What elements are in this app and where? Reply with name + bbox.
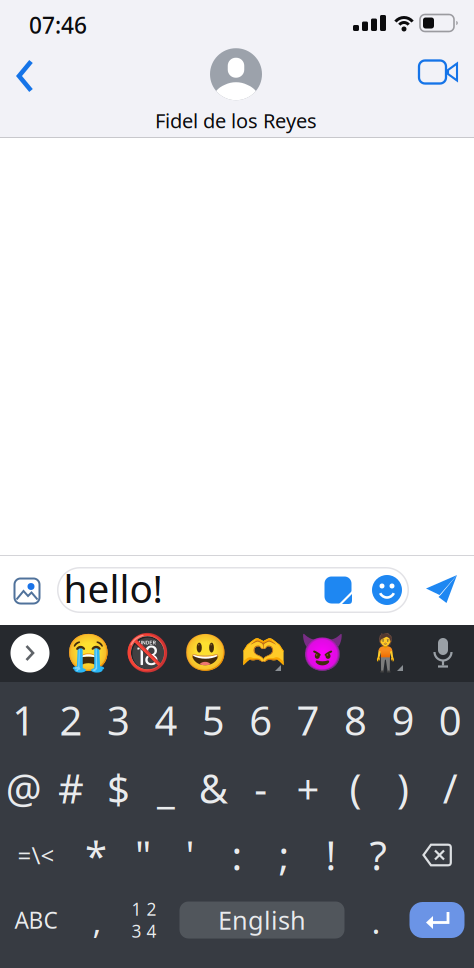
- staticText: 🔞: [124, 632, 169, 673]
- staticText: _: [157, 761, 175, 814]
- button[interactable]: ?: [354, 822, 401, 888]
- staticText: =\<: [17, 839, 54, 871]
- staticText: 🫶: [240, 632, 285, 673]
- button[interactable]: .: [352, 888, 399, 954]
- staticText: 3: [107, 693, 130, 746]
- button[interactable]: :: [213, 822, 260, 888]
- button[interactable]: Emoji: [124, 632, 169, 673]
- staticText: 6: [249, 693, 272, 746]
- staticText: ?: [369, 828, 386, 881]
- button[interactable]: FaceTime video call: [416, 50, 464, 94]
- button[interactable]: Delete: [401, 821, 473, 889]
- staticText: ;: [278, 828, 289, 881]
- button[interactable]: Numbers: [120, 886, 167, 954]
- staticText: 1 2: [131, 897, 156, 920]
- button[interactable]: +: [285, 755, 332, 821]
- button[interactable]: $: [95, 755, 142, 821]
- staticText: ): [397, 761, 409, 814]
- button[interactable]: ): [379, 755, 426, 821]
- staticText: @: [6, 761, 42, 814]
- staticText: 2: [60, 693, 83, 746]
- staticText: 07:46: [29, 10, 87, 40]
- button[interactable]: 2: [48, 687, 95, 753]
- staticText: English: [218, 903, 306, 937]
- button[interactable]: Emoji: [65, 632, 110, 673]
- button[interactable]: Back: [8, 54, 52, 98]
- button[interactable]: &: [190, 755, 237, 821]
- staticText: Fidel de los Reyes: [155, 107, 317, 134]
- staticText: 😭: [65, 632, 110, 673]
- staticText: 9: [391, 693, 414, 746]
- staticText: !: [325, 828, 336, 881]
- button[interactable]: Emoji: [182, 632, 227, 673]
- button[interactable]: -: [237, 755, 284, 821]
- staticText: &: [199, 761, 228, 814]
- staticText: (: [349, 761, 361, 814]
- staticText: .: [371, 899, 380, 943]
- staticText: 5: [202, 693, 225, 746]
- button[interactable]: @: [0, 755, 47, 821]
- button[interactable]: #: [48, 755, 95, 821]
- button[interactable]: _: [142, 755, 189, 821]
- button[interactable]: (: [332, 755, 379, 821]
- staticText: ABC: [14, 905, 57, 935]
- button[interactable]: Emoji: [240, 632, 285, 673]
- button[interactable]: 0: [427, 687, 474, 753]
- button[interactable]: 3: [95, 687, 142, 753]
- staticText: 8: [344, 693, 367, 746]
- staticText: ": [135, 828, 151, 881]
- staticText: 1: [12, 693, 35, 746]
- staticText: +: [297, 761, 320, 814]
- button[interactable]: ABC: [0, 887, 72, 953]
- button[interactable]: ;: [260, 822, 307, 888]
- button[interactable]: Emoji: [299, 632, 344, 673]
- button[interactable]: Voice input: [432, 638, 454, 668]
- button[interactable]: Emoji: [369, 570, 405, 610]
- staticText: 🧍: [362, 632, 407, 673]
- button[interactable]: ,: [73, 888, 120, 954]
- staticText: #: [58, 761, 84, 814]
- button[interactable]: ': [166, 822, 213, 888]
- staticText: ': [185, 828, 194, 881]
- button[interactable]: Send: [420, 568, 464, 612]
- staticText: 4: [154, 693, 177, 746]
- staticText: 😃: [182, 632, 227, 673]
- button[interactable]: 4: [142, 687, 189, 753]
- button[interactable]: 5: [190, 687, 237, 753]
- staticText: -: [254, 761, 267, 814]
- staticText: /: [443, 761, 458, 814]
- button[interactable]: 7: [285, 687, 332, 753]
- button[interactable]: *: [72, 822, 119, 888]
- button[interactable]: Expand toolbar: [10, 633, 49, 672]
- staticText: ,: [92, 899, 101, 943]
- button[interactable]: !: [307, 822, 354, 888]
- button[interactable]: Return: [403, 886, 471, 954]
- button[interactable]: Stickers: [320, 570, 356, 610]
- button[interactable]: Choose photo: [7, 569, 47, 613]
- button[interactable]: 1: [0, 687, 47, 753]
- staticText: 7: [297, 693, 320, 746]
- staticText: hello!: [63, 562, 162, 614]
- button[interactable]: Space: [179, 901, 344, 938]
- button[interactable]: ": [119, 822, 166, 888]
- button[interactable]: Emoji: [362, 632, 407, 673]
- staticText: $: [107, 761, 130, 814]
- staticText: 3 4: [131, 919, 156, 942]
- button[interactable]: 6: [237, 687, 284, 753]
- staticText: 0: [439, 693, 462, 746]
- button[interactable]: /: [427, 755, 474, 821]
- staticText: *: [85, 828, 107, 881]
- button[interactable]: 8: [332, 687, 379, 753]
- button[interactable]: Conversation details: [155, 48, 317, 134]
- button[interactable]: 9: [379, 687, 426, 753]
- staticText: 😈: [299, 632, 344, 673]
- staticText: :: [231, 828, 242, 881]
- button[interactable]: =\<: [0, 822, 72, 888]
